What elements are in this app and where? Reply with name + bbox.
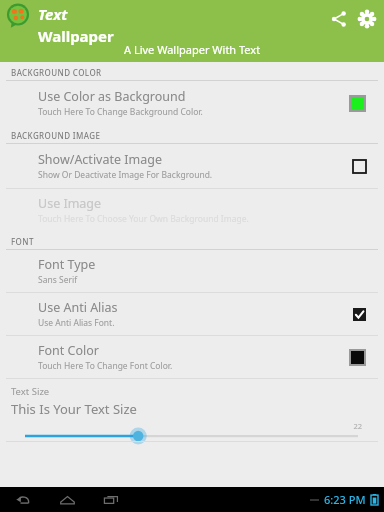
- button[interactable]: Show/Activate Image: [0, 144, 384, 188]
- staticText: Show/Activate Image: [38, 151, 162, 168]
- staticText: Touch Here To Choose Your Own Background…: [38, 213, 249, 225]
- staticText: Use Color as Background: [38, 88, 186, 105]
- button[interactable]: Use Color as Background: [0, 81, 384, 125]
- button[interactable]: Font Color: [0, 336, 384, 378]
- button[interactable]: Use Anti Alias: [0, 293, 384, 335]
- staticText: Font Type: [38, 256, 96, 273]
- staticText: Wallpaper: [38, 26, 114, 46]
- button[interactable]: Back: [12, 489, 34, 511]
- staticText: Text: [38, 4, 68, 24]
- staticText: BACKGROUND IMAGE: [11, 130, 101, 141]
- button[interactable]: Share: [324, 4, 354, 34]
- button[interactable]: Use Image: [0, 189, 384, 231]
- button[interactable]: Text Size: [0, 379, 384, 441]
- staticText: BACKGROUND COLOR: [11, 67, 102, 78]
- button[interactable]: Settings: [354, 4, 380, 34]
- staticText: A Live Wallpaper With Text: [124, 42, 261, 57]
- button[interactable]: Font Type: [0, 250, 384, 292]
- button[interactable]: Home: [56, 489, 78, 511]
- staticText: Use Image: [38, 195, 102, 212]
- staticText: Text Size: [11, 385, 50, 398]
- staticText: 22: [0, 421, 362, 431]
- staticText: FONT: [11, 236, 34, 247]
- staticText: Touch Here To Change Background Color.: [38, 106, 203, 118]
- staticText: Show Or Deactivate Image For Background.: [38, 169, 213, 181]
- button[interactable]: Recents: [100, 489, 122, 511]
- staticText: Use Anti Alias: [38, 299, 118, 316]
- staticText: Use Anti Alias Font.: [38, 317, 115, 329]
- staticText: Sans Serif: [38, 274, 78, 286]
- staticText: Touch Here To Change Font Color.: [38, 360, 173, 372]
- staticText: This Is Your Text Size: [11, 400, 137, 418]
- staticText: 6:23 PM: [324, 492, 366, 507]
- staticText: Font Color: [38, 342, 99, 359]
